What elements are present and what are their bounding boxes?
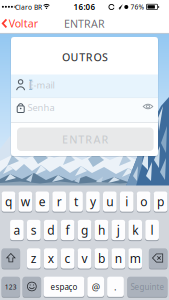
button[interactable]: d <box>44 220 57 240</box>
staticText: k <box>132 222 138 238</box>
staticText: 123 <box>5 282 17 291</box>
button[interactable]: k <box>128 220 142 240</box>
staticText: s <box>31 222 37 238</box>
button[interactable]: @ <box>87 277 104 297</box>
staticText: f <box>66 222 70 238</box>
button[interactable]: v <box>78 248 91 268</box>
staticText: o <box>140 194 147 209</box>
button[interactable] <box>11 98 158 122</box>
staticText: q <box>5 194 12 209</box>
staticText: @ <box>92 281 100 293</box>
staticText: z <box>31 250 37 266</box>
button[interactable]: espaço <box>44 277 84 297</box>
button[interactable]: m <box>128 248 142 268</box>
staticText: n <box>115 250 122 266</box>
button[interactable]: w <box>18 191 32 212</box>
button[interactable]: 123 <box>2 277 20 297</box>
staticText: . <box>114 281 117 293</box>
button[interactable]: ENTRAR <box>17 127 154 151</box>
button[interactable]: h <box>94 220 108 240</box>
staticText: e <box>39 194 46 209</box>
button[interactable]: r <box>52 191 66 212</box>
staticText: l <box>151 222 154 238</box>
button[interactable] <box>23 277 41 297</box>
staticText: p <box>157 194 164 209</box>
staticText: b <box>98 250 105 266</box>
staticText: i <box>125 194 128 209</box>
button[interactable]: s <box>27 220 41 240</box>
staticText: Claro BR <box>15 3 42 12</box>
staticText: v <box>81 250 87 266</box>
staticText: Voltar <box>9 16 38 30</box>
staticText: g <box>81 222 88 238</box>
button[interactable]: Voltar <box>2 16 38 30</box>
button[interactable] <box>149 248 167 268</box>
button[interactable]: z <box>27 248 41 268</box>
staticText: OUTROS <box>62 50 108 64</box>
staticText: a <box>13 222 20 238</box>
staticText: w <box>21 194 30 209</box>
staticText: Seguinte <box>130 281 164 292</box>
button[interactable] <box>11 74 158 98</box>
button[interactable] <box>2 248 20 268</box>
button[interactable]: c <box>61 248 74 268</box>
staticText: ENTRAR <box>64 16 105 31</box>
button[interactable]: l <box>145 220 159 240</box>
button[interactable]: f <box>61 220 74 240</box>
button[interactable]: a <box>10 220 24 240</box>
staticText: espaço <box>50 281 77 292</box>
staticText: h <box>98 222 105 238</box>
staticText: y <box>90 194 96 209</box>
staticText: u <box>106 194 113 209</box>
button[interactable]: x <box>44 248 57 268</box>
staticText: Senha <box>27 101 54 113</box>
staticText: m <box>130 250 141 266</box>
button[interactable]: p <box>154 191 167 212</box>
staticText: c <box>65 250 71 266</box>
staticText: x <box>48 250 54 266</box>
button[interactable]: g <box>78 220 91 240</box>
button[interactable]: . <box>107 277 124 297</box>
staticText: t <box>74 194 78 209</box>
staticText: E-mail <box>28 79 54 91</box>
button[interactable]: y <box>86 191 100 212</box>
staticText: 76% <box>130 2 144 11</box>
button[interactable]: n <box>111 248 125 268</box>
button[interactable]: t <box>69 191 83 212</box>
staticText: d <box>47 222 54 238</box>
button[interactable]: j <box>111 220 125 240</box>
button[interactable]: u <box>103 191 117 212</box>
button[interactable]: e <box>35 191 49 212</box>
button[interactable]: i <box>120 191 134 212</box>
button[interactable]: o <box>137 191 150 212</box>
staticText: 16:06 <box>73 1 95 12</box>
staticText: ENTRAR <box>62 132 109 146</box>
staticText: j <box>117 222 120 238</box>
button[interactable]: b <box>94 248 108 268</box>
button[interactable]: Seguinte <box>127 277 167 297</box>
staticText: r <box>57 194 62 209</box>
button[interactable]: q <box>2 191 15 212</box>
